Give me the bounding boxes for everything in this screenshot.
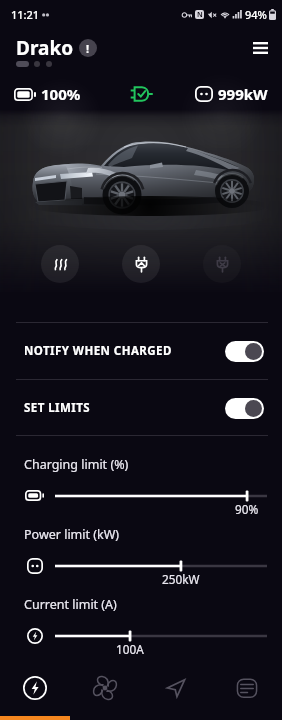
staticText: 999kW <box>218 84 268 104</box>
staticText: 11:21 <box>11 7 40 22</box>
staticText: 90% <box>235 501 259 517</box>
button[interactable]: Reports <box>211 660 282 716</box>
button[interactable]: Charging <box>0 660 70 716</box>
staticText: Charging limit (%) <box>24 456 129 473</box>
staticText: NOTIFY WHEN CHARGED <box>24 343 172 359</box>
button[interactable]: Menu <box>244 32 276 64</box>
staticText: N <box>197 10 203 19</box>
staticText: 100A <box>116 641 144 657</box>
staticText: 100% <box>41 84 81 104</box>
staticText: Drako <box>16 35 74 61</box>
button[interactable]: Stop charging <box>203 245 241 283</box>
staticText: 94% <box>245 7 267 22</box>
staticText: SET LIMITS <box>24 400 91 416</box>
staticText: 250kW <box>162 571 200 587</box>
button[interactable]: Navigate <box>140 660 211 716</box>
button[interactable]: SET LIMITS <box>0 380 282 436</box>
button[interactable]: Climate <box>70 660 140 716</box>
button[interactable]: Start charging <box>122 245 160 283</box>
button[interactable]: Vehicle info <box>79 39 97 57</box>
staticText: ! <box>86 41 90 56</box>
button[interactable]: Defrost <box>41 245 79 283</box>
staticText: Current limit (A) <box>24 596 117 613</box>
staticText: Power limit (kW) <box>24 526 120 543</box>
button[interactable]: NOTIFY WHEN CHARGED <box>0 323 282 379</box>
